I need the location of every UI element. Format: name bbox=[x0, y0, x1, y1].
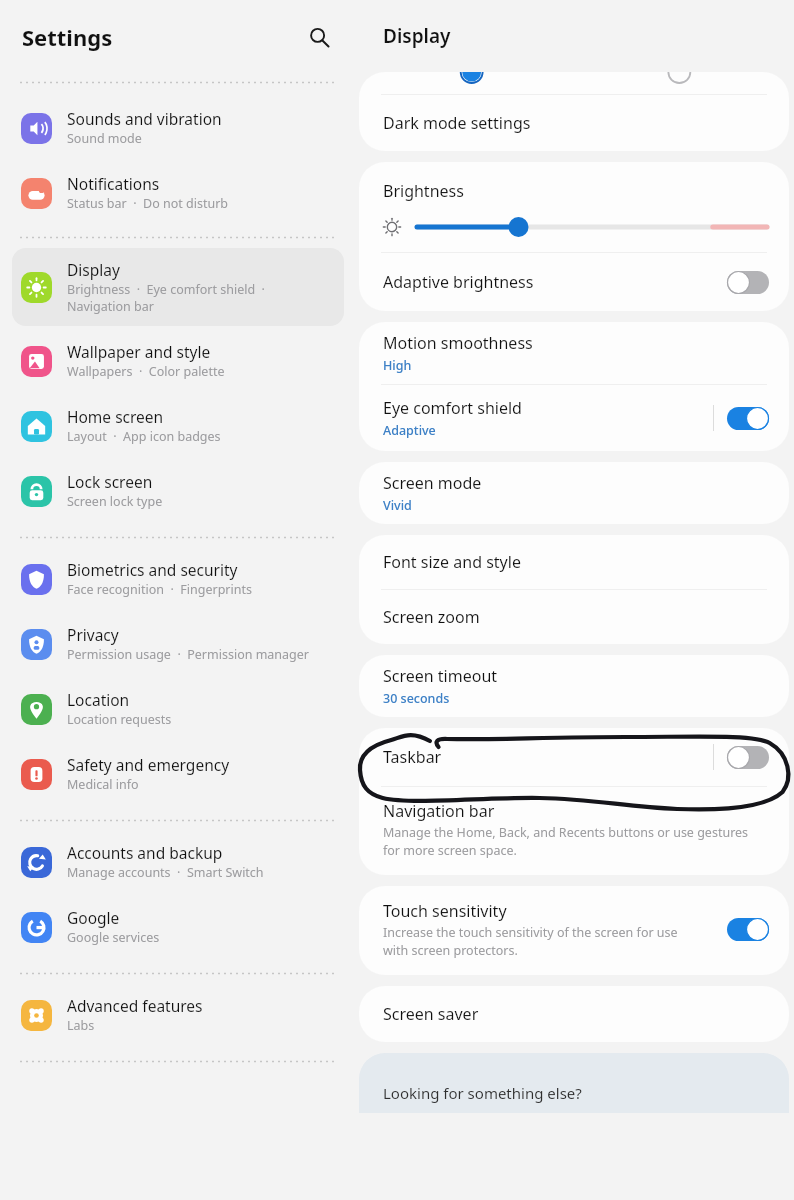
staticText: Permission usage · Permission manager bbox=[67, 646, 310, 663]
staticText: Manage accounts · Smart Switch bbox=[67, 864, 264, 881]
button[interactable]: Eye comfort shield bbox=[359, 385, 789, 451]
staticText: Taskbar bbox=[383, 746, 442, 768]
button[interactable]: Home screen bbox=[12, 395, 344, 456]
staticText: Increase the touch sensitivity of the sc… bbox=[383, 924, 678, 959]
staticText: Eye comfort shield bbox=[383, 397, 522, 419]
staticText: Labs bbox=[67, 1017, 95, 1034]
staticText: Motion smoothness bbox=[383, 332, 533, 354]
staticText: Sound mode bbox=[67, 130, 142, 147]
staticText: Navigation bar bbox=[383, 800, 495, 822]
button[interactable]: Lock screen bbox=[12, 460, 344, 521]
staticText: Accounts and backup bbox=[67, 842, 223, 863]
button[interactable] bbox=[727, 746, 769, 769]
button[interactable]: Display bbox=[12, 248, 344, 326]
staticText: Looking for something else? bbox=[383, 1083, 582, 1103]
staticText: Google bbox=[67, 907, 120, 928]
staticText: Location bbox=[67, 689, 130, 710]
button[interactable]: Motion smoothness bbox=[359, 322, 789, 384]
button[interactable]: Search bbox=[298, 16, 340, 58]
button[interactable]: Dark mode settings bbox=[359, 95, 789, 151]
staticText: Face recognition · Fingerprints bbox=[67, 581, 252, 598]
staticText: Manage the Home, Back, and Recents butto… bbox=[383, 824, 749, 859]
button[interactable] bbox=[727, 271, 769, 294]
staticText: Font size and style bbox=[383, 551, 521, 573]
button[interactable]: Adaptive brightness bbox=[359, 253, 789, 311]
staticText: Display bbox=[67, 259, 120, 280]
staticText: Biometrics and security bbox=[67, 559, 238, 580]
staticText: Location requests bbox=[67, 711, 172, 728]
staticText: Status bar · Do not disturb bbox=[67, 195, 229, 212]
staticText: Medical info bbox=[67, 776, 139, 793]
staticText: Wallpapers · Color palette bbox=[67, 363, 225, 380]
staticText: Lock screen bbox=[67, 471, 153, 492]
button[interactable]: Wallpaper and style bbox=[12, 330, 344, 391]
staticText: Notifications bbox=[67, 173, 160, 194]
staticText: Screen timeout bbox=[383, 665, 498, 687]
button[interactable]: Notifications bbox=[12, 162, 344, 223]
button[interactable]: Accounts and backup bbox=[12, 831, 344, 892]
staticText: Screen mode bbox=[383, 472, 482, 494]
button[interactable]: Biometrics and security bbox=[12, 548, 344, 609]
button[interactable]: Screen saver bbox=[359, 986, 789, 1042]
staticText: 30 seconds bbox=[383, 690, 450, 707]
staticText: Privacy bbox=[67, 624, 119, 645]
button[interactable] bbox=[727, 918, 769, 941]
staticText: Dark mode settings bbox=[383, 112, 531, 134]
staticText: High bbox=[383, 357, 412, 374]
button[interactable]: Safety and emergency bbox=[12, 743, 344, 804]
button[interactable]: Location bbox=[12, 678, 344, 739]
button[interactable]: Advanced features bbox=[12, 984, 344, 1045]
staticText: Google services bbox=[67, 929, 160, 946]
button[interactable]: Taskbar bbox=[359, 728, 789, 786]
button[interactable]: Looking for something else? bbox=[359, 1053, 789, 1113]
button[interactable]: Font size and style bbox=[359, 535, 789, 589]
button[interactable]: Sounds and vibration bbox=[12, 97, 344, 158]
staticText: Adaptive brightness bbox=[383, 271, 534, 293]
staticText: Screen saver bbox=[383, 1003, 479, 1025]
staticText: Vivid bbox=[383, 497, 412, 514]
staticText: Safety and emergency bbox=[67, 754, 230, 775]
staticText: Screen lock type bbox=[67, 493, 163, 510]
button[interactable]: Privacy bbox=[12, 613, 344, 674]
button[interactable]: Screen timeout bbox=[359, 655, 789, 717]
staticText: Home screen bbox=[67, 406, 164, 427]
staticText: Wallpaper and style bbox=[67, 341, 211, 362]
staticText: Screen zoom bbox=[383, 606, 480, 628]
staticText: Adaptive bbox=[383, 422, 436, 439]
staticText: Sounds and vibration bbox=[67, 108, 222, 129]
button[interactable]: Google bbox=[12, 896, 344, 957]
staticText: Display bbox=[383, 23, 451, 49]
button[interactable]: Screen mode bbox=[359, 462, 789, 524]
button[interactable] bbox=[727, 407, 769, 430]
staticText: Settings bbox=[22, 22, 113, 52]
staticText: Advanced features bbox=[67, 995, 203, 1016]
staticText: Brightness bbox=[383, 180, 464, 202]
staticText: Touch sensitivity bbox=[383, 900, 507, 922]
button[interactable]: Screen zoom bbox=[359, 590, 789, 644]
staticText: Layout · App icon badges bbox=[67, 428, 221, 445]
staticText: Brightness · Eye comfort shield · Naviga… bbox=[67, 281, 265, 315]
